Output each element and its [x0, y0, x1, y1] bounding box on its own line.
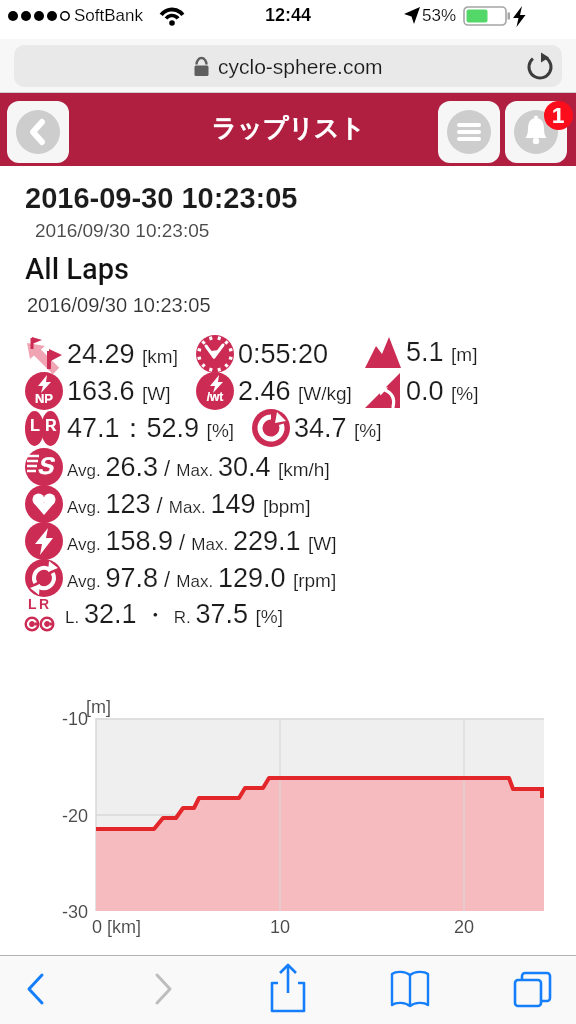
staticText: 0.0 [%]	[406, 376, 479, 406]
staticText: Avg. 26.3 / Max. 30.4 [km/h]	[67, 452, 330, 482]
staticText: -10	[28, 709, 88, 729]
staticText: 53%	[422, 6, 457, 25]
staticText: L. 32.1 ・ R. 37.5 [%]	[65, 599, 284, 631]
staticText: 34.7 [%]	[294, 413, 382, 443]
staticText: 47.1：52.9 [%]	[67, 411, 235, 445]
staticText: 0:55:20	[238, 339, 329, 369]
staticText: Avg. 158.9 / Max. 229.1 [W]	[67, 526, 337, 556]
button[interactable]	[386, 965, 434, 1013]
staticText: 0 [km]	[92, 917, 142, 937]
staticText: 2.46 [W/kg]	[238, 376, 352, 406]
staticText: -20	[28, 806, 88, 826]
staticText: 2016-09-30 10:23:05	[25, 182, 298, 214]
staticText: R	[39, 596, 50, 612]
staticText: All Laps	[25, 252, 130, 286]
staticText: ラップリスト	[0, 113, 576, 144]
staticText: 2016/09/30 10:23:05	[27, 294, 211, 316]
button[interactable]	[7, 101, 69, 163]
staticText: [m]	[86, 697, 111, 717]
staticText: L	[28, 596, 37, 612]
staticText: 10	[260, 917, 300, 937]
staticText: NP	[25, 391, 63, 406]
button[interactable]: cyclo-sphere.com	[14, 45, 562, 87]
staticText: Avg. 97.8 / Max. 129.0 [rpm]	[67, 563, 337, 593]
button[interactable]	[505, 101, 567, 163]
staticText: /wt	[196, 390, 234, 403]
button[interactable]	[264, 961, 312, 1017]
button[interactable]	[438, 101, 500, 163]
staticText: 24.29 [km]	[67, 339, 178, 369]
staticText: 12:44	[0, 5, 576, 25]
staticText: SoftBank	[74, 6, 143, 25]
staticText: Avg. 123 / Max. 149 [bpm]	[67, 489, 311, 519]
staticText: R	[45, 417, 57, 435]
button[interactable]	[518, 45, 562, 87]
staticText: L	[30, 417, 40, 435]
button[interactable]	[12, 965, 60, 1013]
staticText: 163.6 [W]	[67, 376, 171, 406]
staticText: 5.1 [m]	[406, 337, 478, 367]
staticText: 1	[552, 103, 565, 128]
staticText: -30	[28, 902, 88, 922]
button[interactable]	[508, 965, 556, 1013]
staticText: S	[37, 452, 54, 479]
staticText: 20	[444, 917, 484, 937]
button[interactable]	[139, 965, 187, 1013]
staticText: 2016/09/30 10:23:05	[35, 220, 210, 241]
staticText: cyclo-sphere.com	[218, 55, 383, 78]
